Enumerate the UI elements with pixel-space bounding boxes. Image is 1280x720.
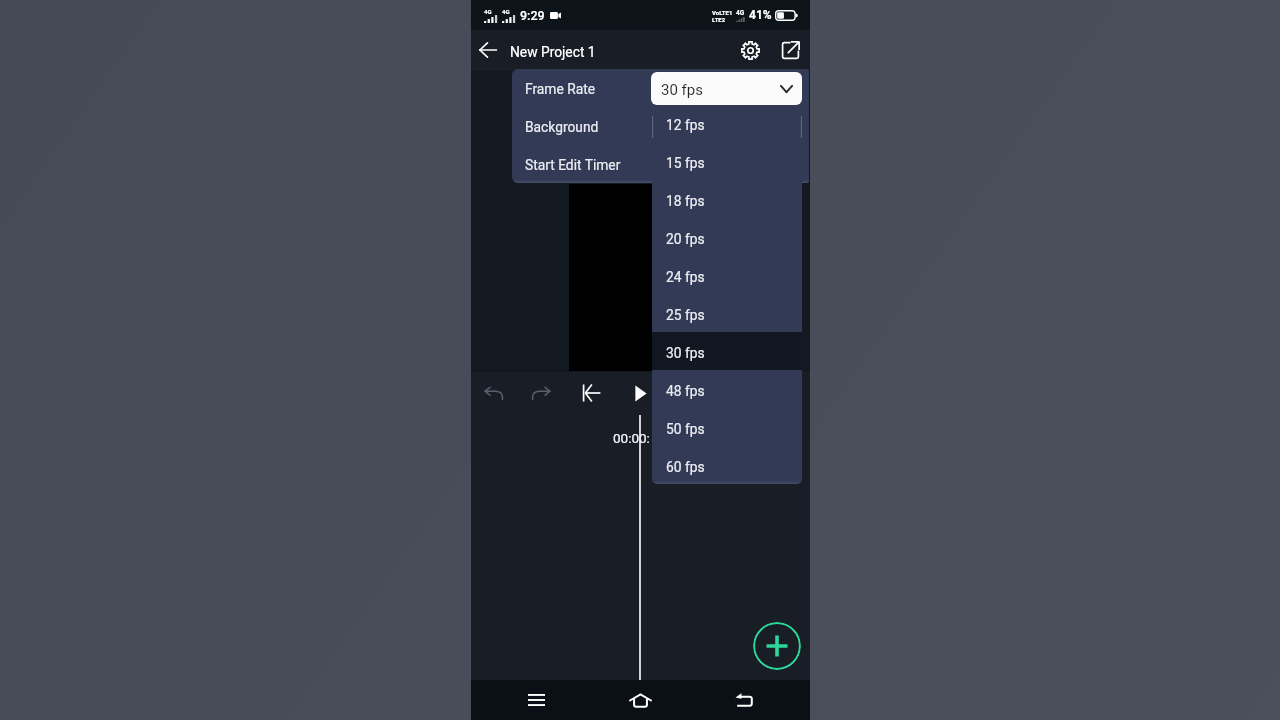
button[interactable]: 12 fps [652, 104, 802, 142]
staticText: 18 fps [666, 193, 705, 209]
staticText: VoLTE1 [712, 9, 733, 16]
button[interactable]: Undo [472, 371, 516, 415]
button[interactable]: 25 fps [652, 294, 802, 332]
staticText: 60 fps [666, 459, 705, 475]
staticText: 12 fps [666, 117, 705, 133]
button[interactable]: Home [618, 678, 662, 720]
staticText: 20 fps [666, 231, 705, 247]
staticText: 24 fps [666, 269, 705, 285]
button[interactable]: Frame Rate [512, 69, 809, 107]
button[interactable]: 30 fps [652, 332, 802, 370]
button[interactable]: Recent apps [514, 678, 558, 720]
staticText: Frame Rate [525, 81, 596, 97]
staticText: 48 fps [666, 383, 705, 399]
staticText: Start Edit Timer [525, 157, 621, 173]
button[interactable]: 48 fps [652, 370, 802, 408]
button[interactable]: 15 fps [652, 142, 802, 180]
staticText: 50 fps [666, 421, 705, 437]
staticText: 4G [484, 8, 492, 15]
button[interactable]: Back [468, 30, 508, 70]
button[interactable]: Background [512, 107, 809, 145]
button[interactable]: Redo [519, 371, 563, 415]
button[interactable]: Play [619, 371, 663, 415]
staticText: Background [525, 119, 599, 135]
button[interactable]: 20 fps [652, 218, 802, 256]
button[interactable]: Add media [753, 622, 801, 670]
staticText: 25 fps [666, 307, 705, 323]
staticText: 4G [502, 8, 510, 15]
button[interactable]: Skip to start [569, 371, 613, 415]
button[interactable]: Start Edit Timer [512, 145, 809, 183]
button[interactable]: 24 fps [652, 256, 802, 294]
button[interactable]: Export [770, 30, 810, 70]
staticText: 30 fps [666, 345, 705, 361]
button[interactable]: Back [722, 678, 766, 720]
button[interactable]: 30 fps [651, 72, 802, 105]
button[interactable]: 50 fps [652, 408, 802, 446]
button[interactable]: 18 fps [652, 180, 802, 218]
staticText: 15 fps [666, 155, 705, 171]
staticText: New Project 1 [510, 44, 596, 60]
button[interactable]: Settings [730, 30, 770, 70]
staticText: 4G [736, 9, 745, 17]
button[interactable]: 60 fps [652, 446, 802, 484]
staticText: 00:00: [613, 430, 650, 446]
staticText: 9:29 [520, 8, 545, 23]
staticText: LTE2 [712, 16, 726, 23]
staticText: 41% [749, 8, 772, 22]
staticText: 30 fps [661, 81, 703, 99]
